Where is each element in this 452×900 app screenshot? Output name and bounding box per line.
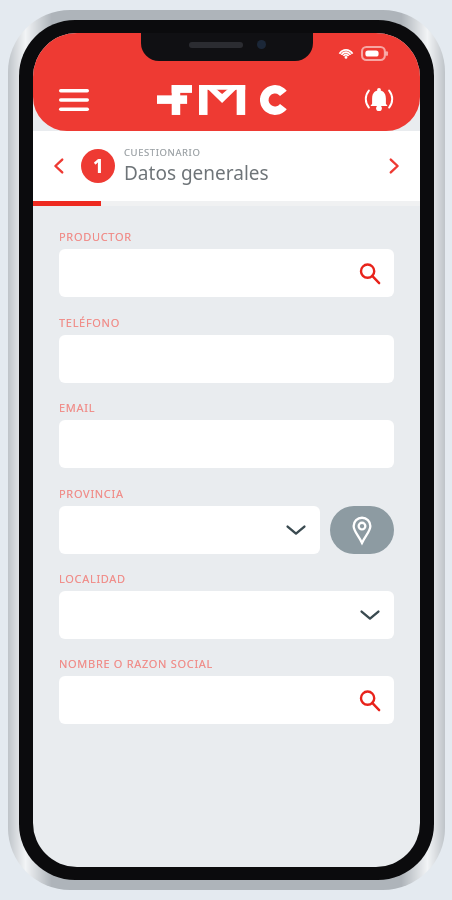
staticText: Datos generales <box>124 160 269 186</box>
button[interactable] <box>59 506 320 554</box>
button[interactable]: Previous <box>39 146 79 186</box>
button[interactable]: Next <box>374 146 414 186</box>
staticText: EMAIL <box>59 400 96 415</box>
button[interactable] <box>59 676 394 724</box>
staticText: LOCALIDAD <box>59 571 126 586</box>
button[interactable] <box>59 249 394 297</box>
button[interactable]: Notifications <box>356 77 402 123</box>
staticText: CUESTIONARIO <box>124 146 201 159</box>
button[interactable]: Use my location <box>330 506 394 554</box>
staticText: NOMBRE O RAZON SOCIAL <box>59 656 214 671</box>
staticText: PRODUCTOR <box>59 229 132 244</box>
button[interactable]: Menu <box>51 77 97 123</box>
staticText: TELÉFONO <box>59 315 120 330</box>
staticText: PROVINCIA <box>59 486 124 501</box>
button[interactable] <box>59 591 394 639</box>
staticText: 1 <box>93 153 104 179</box>
